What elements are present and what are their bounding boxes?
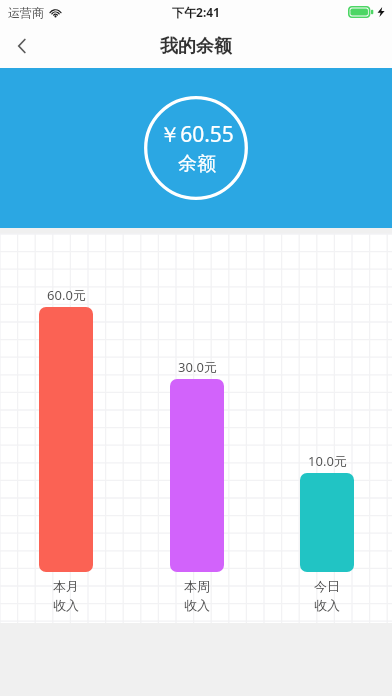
staticText: 收入 bbox=[314, 597, 340, 613]
staticText: 我的余额 bbox=[160, 35, 232, 58]
staticText: 收入 bbox=[53, 597, 79, 613]
staticText: 10.0元 bbox=[308, 452, 347, 470]
staticText: 运营商 bbox=[8, 5, 44, 20]
staticText: ￥60.55 bbox=[159, 120, 234, 149]
button[interactable]: Back bbox=[0, 24, 44, 68]
staticText: 下午2:41 bbox=[172, 4, 220, 20]
staticText: 本周 bbox=[184, 578, 210, 594]
staticText: 本月 bbox=[53, 578, 79, 594]
staticText: 余额 bbox=[178, 152, 216, 176]
staticText: 30.0元 bbox=[178, 358, 217, 376]
button[interactable]: Balance bbox=[144, 96, 248, 200]
staticText: 今日 bbox=[314, 578, 340, 594]
staticText: 60.0元 bbox=[47, 286, 86, 304]
staticText: 收入 bbox=[184, 597, 210, 613]
